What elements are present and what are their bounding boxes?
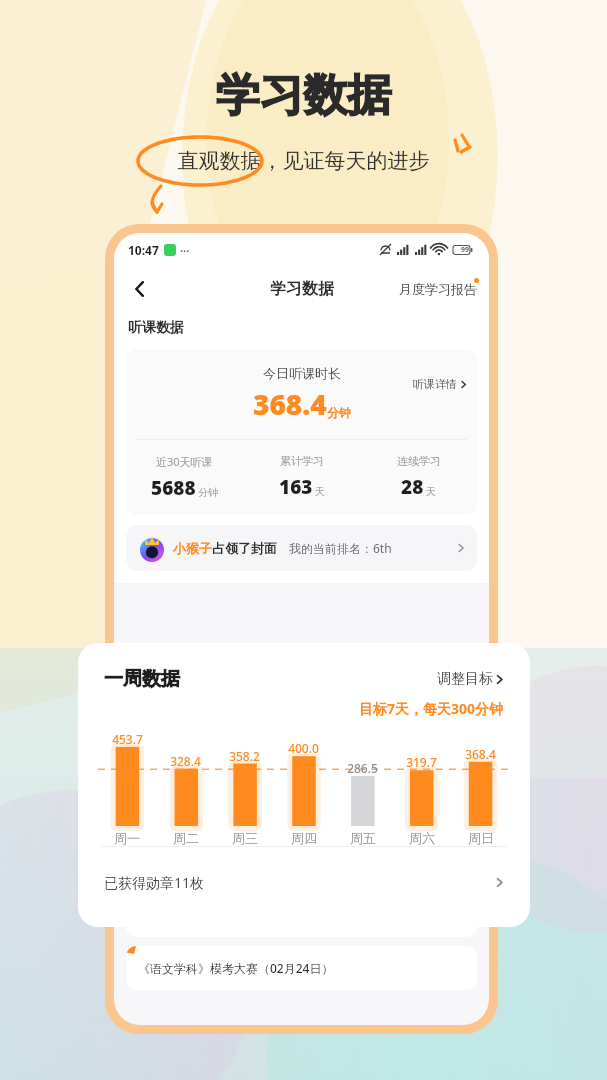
staticText: 天	[315, 485, 325, 498]
staticText: 分钟	[327, 405, 351, 420]
staticText: 5688	[151, 475, 196, 501]
button[interactable]: 《数⽉重画⾼权》模 5⼈员(00)⽉00⽇)	[126, 873, 477, 937]
staticText: 月度学习报告	[399, 281, 477, 297]
staticText: 近30天听课	[156, 454, 213, 469]
button[interactable]: 听课详情	[413, 377, 467, 391]
staticText: 分钟	[198, 486, 218, 499]
staticText: 周五	[350, 830, 376, 846]
staticText: ···	[180, 243, 190, 258]
staticText: 学习数据	[0, 68, 607, 123]
staticText: 《语文学科》模考大赛（02月24日）	[138, 960, 334, 976]
staticText: 周三	[232, 830, 258, 846]
staticText: 周日	[468, 830, 494, 846]
staticText: 358.2	[229, 748, 260, 764]
staticText: 周六	[409, 830, 435, 846]
staticText: 调整目标	[437, 670, 493, 688]
staticText: 小猴子	[173, 540, 212, 556]
staticText: 听课数据	[128, 319, 184, 337]
button[interactable]: 今日听课时长	[126, 349, 477, 515]
staticText: 319.7	[406, 754, 437, 770]
staticText: 一周数据	[104, 667, 180, 691]
staticText: 368.4	[253, 385, 327, 423]
staticText: 今日听课时长	[263, 365, 341, 381]
staticText: 28	[401, 474, 424, 500]
staticText: 连续学习	[397, 454, 441, 468]
button[interactable]: 小猴子	[126, 525, 477, 571]
staticText: 占领了封面	[212, 540, 277, 556]
staticText: 我的当前排名：6th	[289, 540, 392, 556]
staticText: 《数⽉重画⾼权》模 5⼈员(00)⽉00⽇)	[138, 883, 343, 899]
staticText: 周二	[173, 830, 199, 846]
staticText: 累计学习	[280, 454, 324, 468]
staticText: 天	[426, 485, 436, 498]
staticText: 已获得勋章11枚	[104, 873, 205, 892]
staticText: 直观数据，见证每天的进步	[0, 148, 607, 174]
staticText: 学习数据	[270, 279, 334, 299]
staticText: 听课详情	[413, 377, 457, 391]
button[interactable]: 已获得勋章11枚	[88, 847, 520, 917]
staticText: 453.7	[112, 731, 143, 747]
staticText: 400.0	[288, 740, 319, 756]
button[interactable]: 《语文学科》模考大赛（02月24日）	[126, 946, 477, 990]
staticText: 286.5	[347, 760, 378, 776]
button[interactable]: Back	[120, 269, 160, 309]
staticText: 368.4	[465, 746, 496, 762]
staticText: 99	[461, 245, 470, 255]
staticText: 10:47	[128, 242, 159, 258]
button[interactable]: 月度学习报告	[399, 281, 477, 297]
button[interactable]: 调整目标	[437, 670, 504, 688]
staticText: 328.4	[170, 753, 201, 769]
staticText: 周一	[114, 830, 140, 846]
staticText: 周四	[291, 830, 317, 846]
staticText: 163	[279, 474, 313, 500]
staticText: 目标7天，每天300分钟	[359, 699, 504, 718]
